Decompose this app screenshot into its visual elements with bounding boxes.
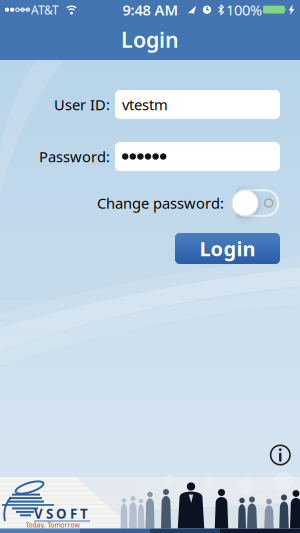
staticText: vtestm bbox=[122, 95, 168, 114]
staticText: Login bbox=[199, 235, 255, 262]
staticText: V S O F T bbox=[34, 505, 88, 522]
staticText: AT&T bbox=[31, 2, 59, 18]
staticText: Password: bbox=[39, 147, 110, 166]
staticText: Login bbox=[121, 25, 179, 54]
button[interactable]: Change password bbox=[232, 189, 279, 217]
staticText: Today. Tomorrow bbox=[25, 521, 79, 529]
staticText: Change password: bbox=[97, 193, 224, 213]
staticText: 100% bbox=[226, 0, 262, 20]
button[interactable]: vtestm bbox=[115, 90, 280, 119]
button[interactable]: Login bbox=[175, 233, 280, 264]
staticText: 9:48 AM bbox=[122, 0, 178, 20]
staticText: User ID: bbox=[54, 95, 110, 114]
button[interactable]: Info bbox=[270, 444, 291, 465]
button[interactable] bbox=[115, 142, 280, 171]
